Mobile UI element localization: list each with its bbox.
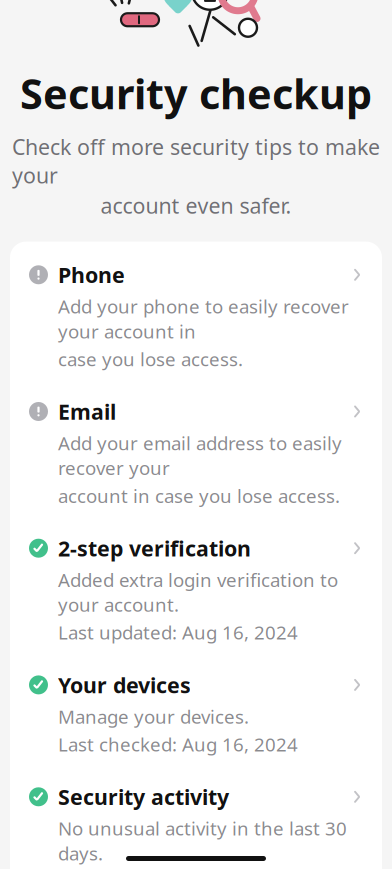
button[interactable]: Phone <box>10 248 382 384</box>
button[interactable]: Your devices <box>10 658 382 770</box>
staticText: Email <box>58 397 116 426</box>
button[interactable]: 2-step verification <box>10 521 382 658</box>
staticText: Check off more security tips to make you… <box>12 133 380 189</box>
staticText: Phone <box>58 261 125 289</box>
button[interactable]: Email <box>10 384 382 521</box>
staticText: Your devices <box>58 671 191 699</box>
staticText: Last checked: Aug 16, 2024 <box>58 732 298 757</box>
staticText: case you lose access. <box>58 346 243 371</box>
staticText: account even safer. <box>100 191 291 220</box>
staticText: Added extra login verification to your a… <box>58 567 338 617</box>
staticText: Add your email address to easily recover… <box>58 431 342 480</box>
staticText: Last updated: Aug 16, 2024 <box>58 620 298 645</box>
staticText: No unusual activity in the last 30 days. <box>58 816 347 866</box>
staticText: Manage your devices. <box>58 704 249 729</box>
staticText: Security checkup <box>20 66 372 121</box>
button[interactable]: Security activity <box>10 770 382 869</box>
staticText: Add your phone to easily recover your ac… <box>58 294 349 344</box>
staticText: Security activity <box>58 783 229 811</box>
staticText: account in case you lose access. <box>58 483 340 508</box>
staticText: 2-step verification <box>58 534 251 562</box>
